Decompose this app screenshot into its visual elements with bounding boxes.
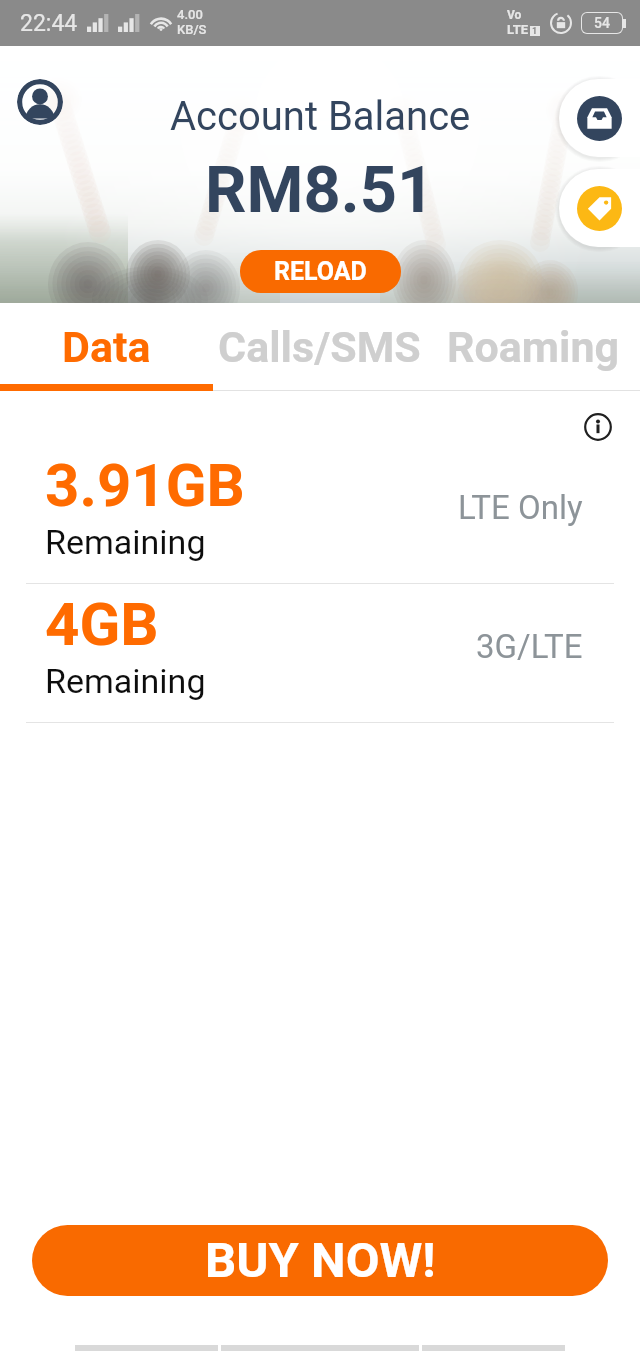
staticText: RELOAD: [274, 257, 367, 286]
staticText: Remaining: [45, 661, 206, 701]
staticText: 4.00: [177, 7, 203, 22]
staticText: RM8.51: [205, 152, 435, 228]
staticText: 1: [532, 26, 538, 36]
staticText: 4GB: [45, 589, 159, 659]
staticText: LTE Only: [458, 488, 583, 527]
staticText: 22:44: [20, 10, 78, 37]
button[interactable]: Profile: [17, 79, 63, 125]
staticText: Data: [62, 322, 151, 372]
staticText: Remaining: [45, 522, 206, 562]
button[interactable]: Calls/SMS: [213, 303, 426, 391]
staticText: 3.91GB: [45, 450, 245, 520]
staticText: Calls/SMS: [218, 322, 421, 372]
staticText: KB/S: [177, 22, 207, 37]
button[interactable]: BUY NOW!: [32, 1225, 608, 1296]
staticText: LTE: [507, 22, 529, 37]
button[interactable]: Roaming: [426, 303, 640, 391]
button[interactable]: Offers: [559, 169, 640, 247]
staticText: BUY NOW!: [205, 1232, 436, 1289]
staticText: Vo: [507, 8, 522, 22]
staticText: Account Balance: [170, 93, 471, 140]
button[interactable]: Info: [582, 411, 614, 443]
staticText: 3G/LTE: [476, 627, 583, 666]
staticText: Roaming: [447, 322, 620, 372]
staticText: 54: [594, 15, 610, 31]
button[interactable]: RELOAD: [240, 250, 401, 293]
button[interactable]: Data: [0, 303, 213, 391]
button[interactable]: Inbox: [559, 79, 640, 157]
